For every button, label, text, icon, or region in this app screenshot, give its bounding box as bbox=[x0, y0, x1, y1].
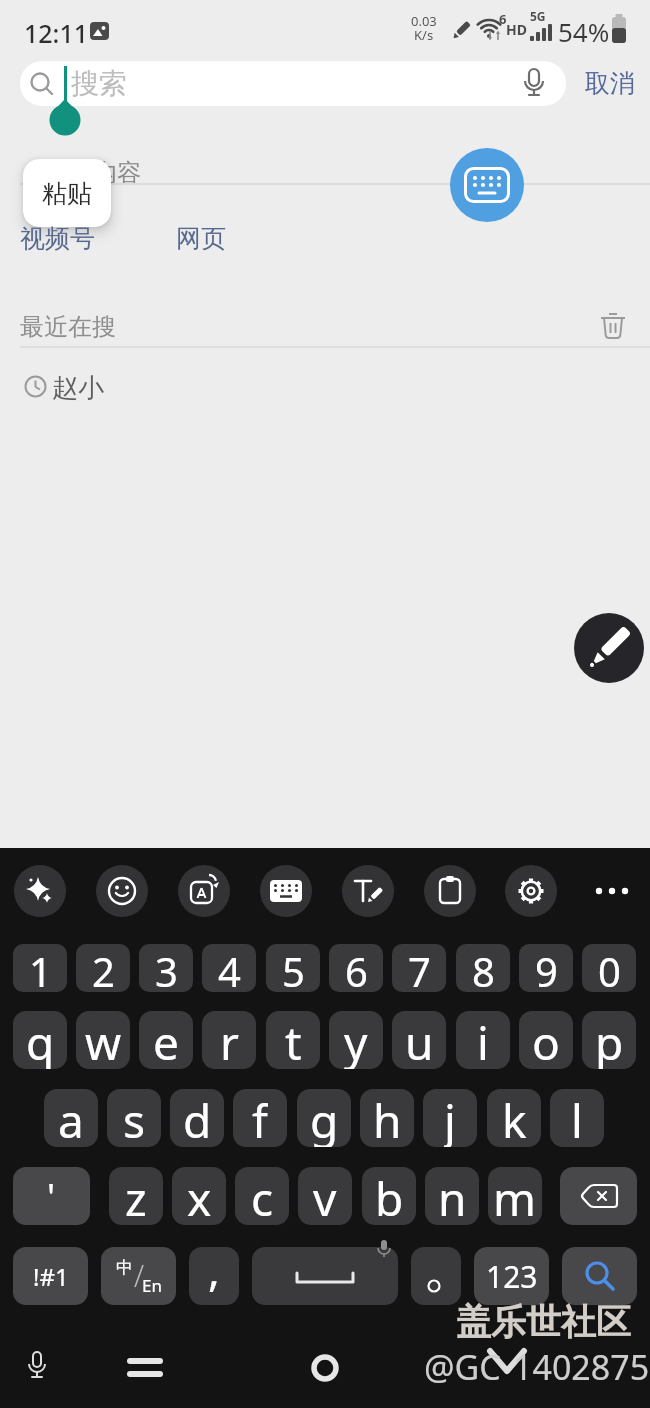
button[interactable] bbox=[505, 865, 557, 917]
button[interactable]: 9 bbox=[519, 944, 573, 992]
staticText: e bbox=[153, 1011, 179, 1069]
staticText: 取消 bbox=[585, 68, 635, 99]
button[interactable]: 5 bbox=[266, 944, 320, 992]
staticText: c bbox=[251, 1167, 274, 1225]
button[interactable]: q bbox=[13, 1011, 67, 1069]
staticText: u bbox=[405, 1011, 434, 1069]
button[interactable] bbox=[178, 865, 230, 917]
button[interactable]: n bbox=[425, 1167, 479, 1225]
button[interactable]: 123 bbox=[474, 1247, 549, 1305]
button[interactable]: 取消 bbox=[582, 61, 638, 106]
button[interactable]: 3 bbox=[139, 944, 193, 992]
button[interactable] bbox=[424, 865, 476, 917]
staticText: p bbox=[595, 1011, 624, 1069]
button[interactable]: 粘贴 bbox=[23, 159, 111, 227]
button[interactable]: e bbox=[139, 1011, 193, 1069]
staticText: l bbox=[571, 1089, 583, 1147]
staticText: K/s bbox=[414, 26, 434, 42]
button[interactable]: 视频号 bbox=[20, 222, 98, 254]
button[interactable]: c bbox=[235, 1167, 289, 1225]
staticText: 0 bbox=[598, 944, 621, 992]
button[interactable]: x bbox=[172, 1167, 226, 1225]
staticText: 最近在搜 bbox=[20, 312, 116, 340]
button[interactable]: g bbox=[297, 1089, 351, 1147]
button[interactable] bbox=[310, 1353, 340, 1383]
staticText: 12:11 bbox=[24, 16, 89, 44]
button[interactable]: 网页 bbox=[176, 222, 230, 254]
staticText: 盖乐世社区 bbox=[456, 1300, 631, 1342]
staticText: 6 bbox=[345, 944, 368, 992]
button[interactable]: z bbox=[109, 1167, 163, 1225]
button[interactable]: j bbox=[423, 1089, 477, 1147]
staticText: 赵小 bbox=[52, 372, 104, 402]
button[interactable] bbox=[96, 865, 148, 917]
button[interactable]: l bbox=[550, 1089, 604, 1147]
button[interactable]: ' bbox=[13, 1167, 90, 1225]
button[interactable]: 1 bbox=[13, 944, 67, 992]
button[interactable]: 赵小 bbox=[52, 372, 152, 402]
button[interactable]: , bbox=[189, 1247, 239, 1305]
button[interactable]: h bbox=[360, 1089, 414, 1147]
button[interactable]: a bbox=[44, 1089, 98, 1147]
button[interactable]: y bbox=[329, 1011, 383, 1069]
staticText: 6 bbox=[499, 10, 507, 24]
button[interactable] bbox=[127, 1356, 165, 1380]
button[interactable] bbox=[411, 1247, 461, 1305]
button[interactable]: m bbox=[488, 1167, 542, 1225]
staticText: w bbox=[85, 1011, 122, 1069]
button[interactable]: 0 bbox=[582, 944, 636, 992]
staticText: 54% bbox=[558, 14, 610, 44]
staticText: 0.03 bbox=[411, 12, 437, 28]
button[interactable]: r bbox=[202, 1011, 256, 1069]
button[interactable]: 4 bbox=[202, 944, 256, 992]
button[interactable] bbox=[574, 613, 644, 683]
button[interactable]: p bbox=[582, 1011, 636, 1069]
staticText: En bbox=[142, 1274, 162, 1297]
button[interactable]: 2 bbox=[76, 944, 130, 992]
button[interactable] bbox=[450, 148, 524, 222]
staticText: 8 bbox=[472, 944, 495, 992]
button[interactable] bbox=[592, 884, 632, 898]
button[interactable] bbox=[14, 865, 66, 917]
button[interactable]: !#1 bbox=[13, 1247, 88, 1305]
button[interactable] bbox=[560, 1167, 637, 1225]
button[interactable] bbox=[26, 1352, 48, 1384]
button[interactable]: k bbox=[487, 1089, 541, 1147]
button[interactable]: w bbox=[76, 1011, 130, 1069]
staticText: 中 bbox=[116, 1257, 133, 1278]
staticText: o bbox=[532, 1011, 560, 1069]
staticText: g bbox=[310, 1089, 339, 1147]
staticText: 3 bbox=[155, 944, 178, 992]
button[interactable] bbox=[600, 312, 626, 340]
staticText: i bbox=[477, 1011, 489, 1069]
staticText: 1402875 bbox=[513, 1344, 650, 1384]
staticText: z bbox=[125, 1167, 147, 1225]
staticText: 4 bbox=[218, 944, 241, 992]
button[interactable] bbox=[252, 1247, 398, 1305]
button[interactable]: 8 bbox=[456, 944, 510, 992]
button[interactable] bbox=[562, 1247, 637, 1305]
button[interactable]: d bbox=[170, 1089, 224, 1147]
staticText: 7 bbox=[408, 944, 431, 992]
staticText: h bbox=[373, 1089, 402, 1147]
staticText: v bbox=[313, 1167, 337, 1225]
button[interactable]: u bbox=[392, 1011, 446, 1069]
button[interactable]: v bbox=[298, 1167, 352, 1225]
staticText: q bbox=[26, 1011, 55, 1069]
button[interactable]: 中 bbox=[101, 1247, 176, 1305]
button[interactable]: f bbox=[233, 1089, 287, 1147]
staticText: 搜索 bbox=[71, 66, 127, 101]
staticText: m bbox=[493, 1167, 537, 1225]
button[interactable] bbox=[486, 1344, 528, 1380]
staticText: 5 bbox=[282, 944, 305, 992]
button[interactable]: 6 bbox=[329, 944, 383, 992]
button[interactable]: 7 bbox=[392, 944, 446, 992]
button[interactable]: i bbox=[456, 1011, 510, 1069]
button[interactable]: t bbox=[266, 1011, 320, 1069]
button[interactable]: 搜索 bbox=[20, 61, 566, 106]
button[interactable] bbox=[342, 865, 394, 917]
button[interactable] bbox=[260, 865, 312, 917]
button[interactable]: s bbox=[107, 1089, 161, 1147]
button[interactable]: b bbox=[362, 1167, 416, 1225]
button[interactable]: o bbox=[519, 1011, 573, 1069]
